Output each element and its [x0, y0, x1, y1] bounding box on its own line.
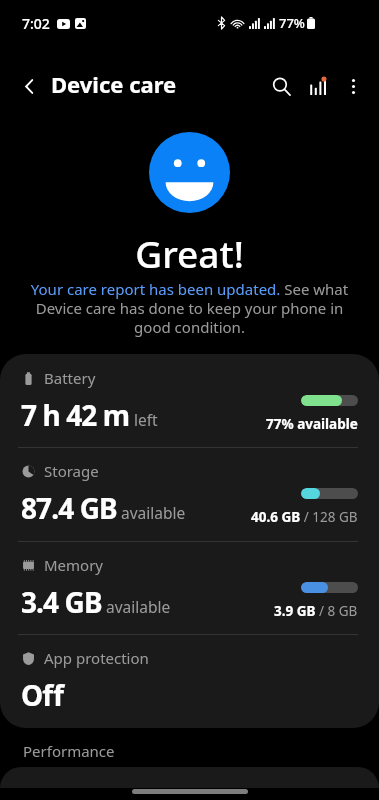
button[interactable]: Storage — [0, 447, 379, 540]
button[interactable]: Navigate up — [13, 70, 45, 102]
staticText: 40.6 GB / 128 GB — [251, 508, 358, 526]
staticText: Your care report has been updated. See w… — [8, 279, 371, 337]
staticText: available — [102, 596, 171, 617]
button[interactable]: Battery — [0, 354, 379, 447]
button[interactable]: Your care report has been updated. See w… — [8, 279, 371, 337]
staticText: Storage — [44, 461, 99, 481]
staticText: Memory — [44, 555, 104, 575]
staticText: left — [130, 409, 158, 430]
button[interactable]: Search — [263, 68, 299, 104]
staticText: Great! — [0, 228, 379, 278]
button[interactable]: More options — [335, 68, 371, 104]
button[interactable]: Memory — [0, 541, 379, 634]
staticText: Off — [21, 676, 63, 714]
staticText: App protection — [44, 648, 149, 668]
button[interactable] — [0, 767, 379, 788]
staticText: Battery — [44, 368, 96, 388]
staticText: 7 h 42 m — [21, 396, 130, 434]
staticText: 7:02 — [22, 14, 50, 33]
staticText: 87.4 GB — [21, 489, 117, 527]
staticText: 77% — [279, 14, 305, 32]
staticText: Device care — [51, 69, 177, 99]
staticText: 3.4 GB — [21, 583, 102, 621]
button[interactable]: Care report — [299, 68, 335, 104]
staticText: Performance — [23, 741, 115, 761]
button[interactable]: App protection — [0, 634, 379, 727]
staticText: 3.9 GB / 8 GB — [274, 602, 358, 620]
staticText: 77% available — [266, 415, 358, 433]
staticText: available — [117, 502, 186, 523]
